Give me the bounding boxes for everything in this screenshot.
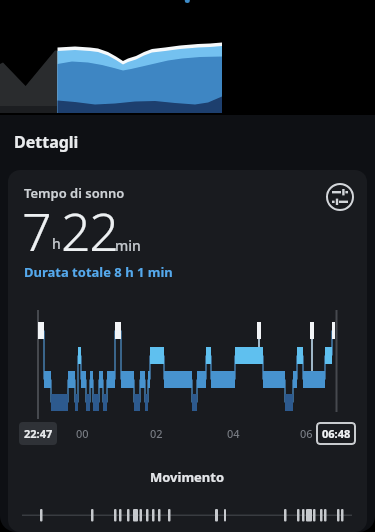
button[interactable]: 22:47 — [19, 422, 57, 445]
staticText: Durata totale 8 h 1 min — [24, 263, 173, 281]
staticText: 04 — [227, 426, 240, 440]
staticText: 06:48 — [322, 426, 351, 441]
staticText: h — [52, 234, 61, 253]
button[interactable]: 06:48 — [316, 422, 356, 445]
staticText: 22 — [61, 195, 118, 266]
staticText: Dettagli — [14, 131, 79, 153]
staticText: 7 — [22, 195, 52, 266]
staticText: 06 — [300, 426, 313, 440]
staticText: Tempo di sonno — [24, 184, 125, 202]
staticText: 00 — [76, 426, 89, 440]
staticText: min — [115, 236, 141, 255]
button[interactable] — [323, 180, 357, 214]
staticText: Movimento — [150, 468, 225, 484]
staticText: 22:47 — [24, 426, 53, 441]
staticText: 02 — [150, 426, 163, 440]
